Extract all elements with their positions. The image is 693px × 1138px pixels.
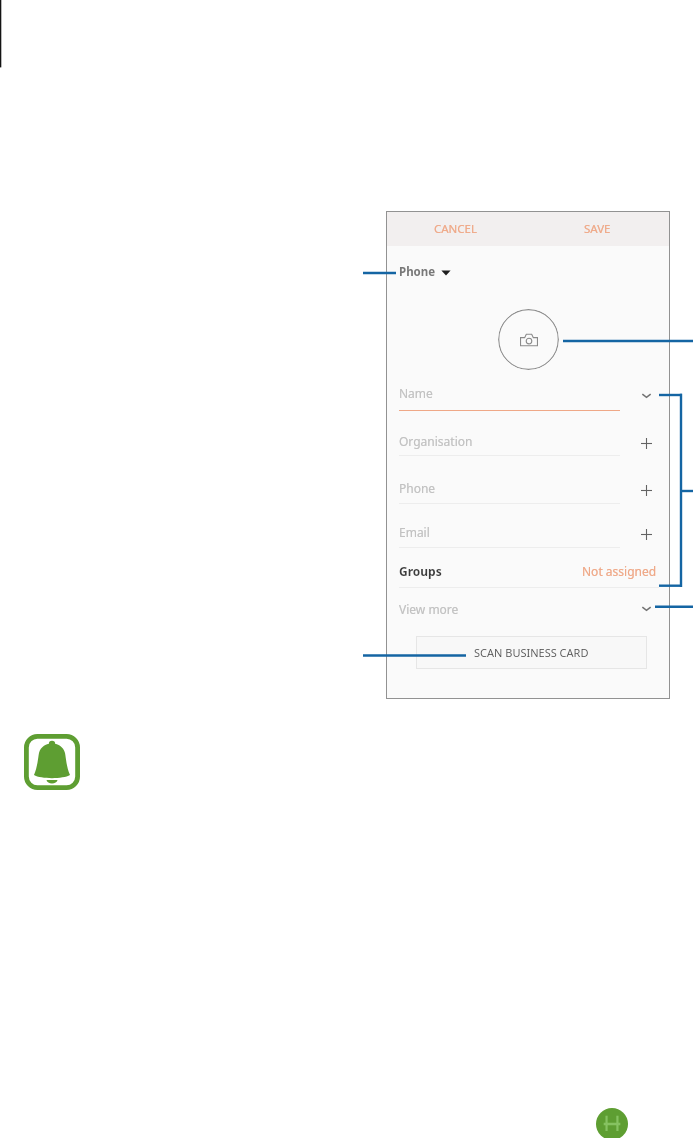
button[interactable]: Groups	[399, 557, 657, 584]
staticText: Name	[399, 385, 433, 401]
button[interactable]: CANCEL	[427, 212, 485, 246]
button[interactable]: Expand	[638, 387, 654, 403]
button[interactable]: Add	[638, 526, 654, 542]
staticText: Not assigned	[582, 563, 657, 579]
button[interactable]: Email	[387, 520, 669, 547]
staticText: Groups	[399, 563, 442, 579]
button[interactable]: SAVE	[572, 212, 622, 246]
button[interactable]: Phone	[399, 259, 669, 285]
button[interactable]: Add	[638, 435, 654, 451]
staticText: Organisation	[399, 433, 473, 449]
button[interactable]: Name	[387, 381, 669, 410]
staticText: CANCEL	[434, 221, 478, 237]
button[interactable]: Phone	[387, 476, 669, 503]
staticText: SAVE	[584, 221, 611, 237]
button[interactable]: Add	[638, 482, 654, 498]
staticText: Phone	[399, 480, 436, 496]
button[interactable]: View more	[387, 595, 669, 622]
other: Expand	[638, 600, 654, 616]
button[interactable]: Organisation	[387, 429, 669, 455]
other: Note	[24, 734, 80, 790]
button[interactable]: SCAN BUSINESS CARD	[416, 636, 647, 669]
staticText: View more	[399, 601, 459, 617]
staticText: Email	[399, 524, 430, 540]
button[interactable]: Add photo	[498, 309, 559, 370]
staticText: Phone	[399, 264, 436, 280]
staticText: SCAN BUSINESS CARD	[474, 645, 589, 660]
